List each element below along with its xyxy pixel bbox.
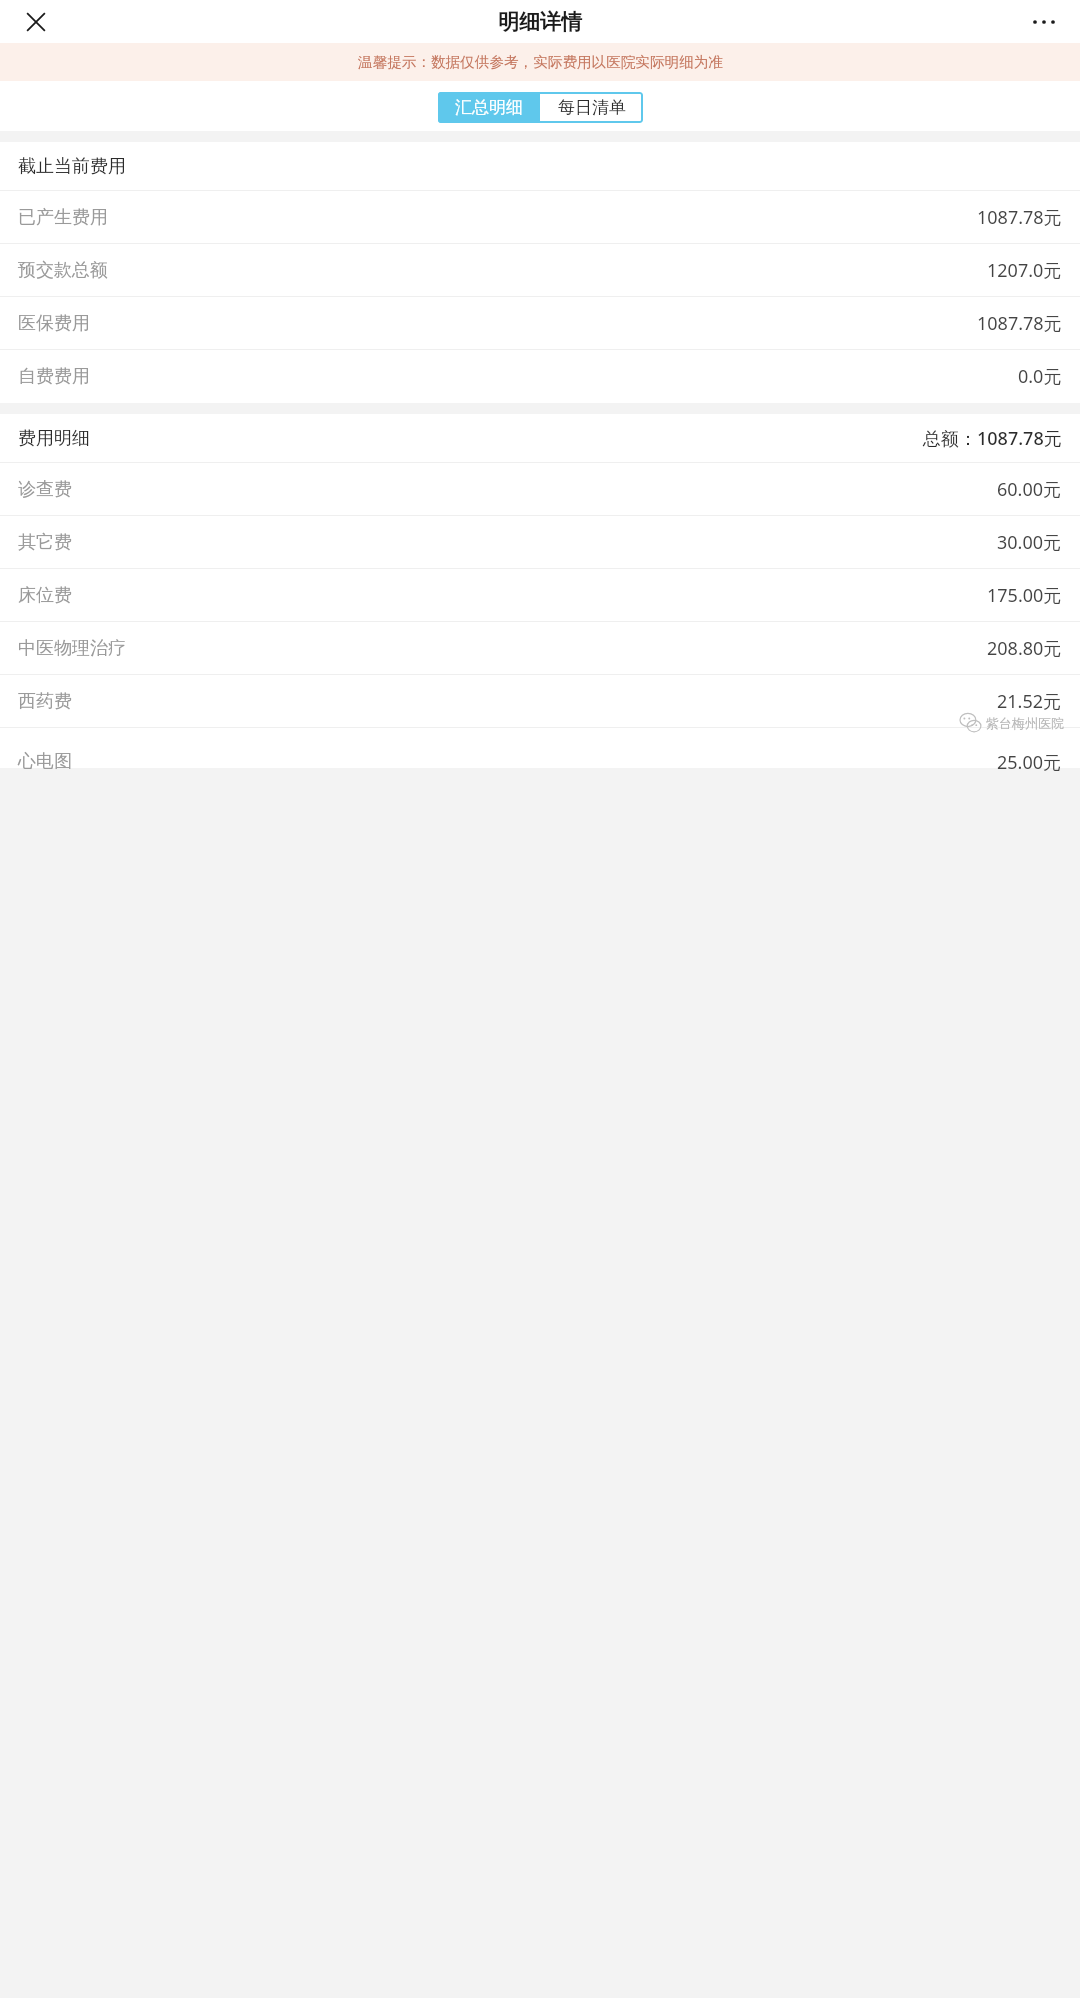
- staticText: 总额：1087.78元: [923, 426, 1062, 451]
- button[interactable]: Close: [14, 0, 58, 43]
- staticText: 明细详情: [498, 9, 582, 35]
- staticText: 1087.78元: [977, 311, 1062, 336]
- button[interactable]: 其它费: [0, 516, 1080, 569]
- staticText: 每日清单: [558, 97, 626, 118]
- staticText: 21.52元: [997, 689, 1062, 714]
- button[interactable]: 心电图: [0, 728, 1080, 768]
- button[interactable]: 医保费用: [0, 297, 1080, 350]
- staticText: 1207.0元: [987, 258, 1062, 283]
- staticText: 诊查费: [18, 478, 72, 501]
- staticText: 175.00元: [987, 583, 1062, 608]
- staticText: 温馨提示：数据仅供参考，实际费用以医院实际明细为准: [358, 53, 723, 71]
- staticText: 费用明细: [18, 427, 90, 450]
- staticText: 25.00元: [997, 750, 1062, 775]
- staticText: 预交款总额: [18, 259, 108, 282]
- staticText: 208.80元: [987, 636, 1062, 661]
- button[interactable]: 每日清单: [540, 92, 643, 123]
- staticText: 60.00元: [997, 477, 1062, 502]
- button[interactable]: 中医物理治疗: [0, 622, 1080, 675]
- button[interactable]: 已产生费用: [0, 191, 1080, 244]
- button[interactable]: 截止当前费用: [0, 142, 1080, 191]
- button[interactable]: 自费费用: [0, 350, 1080, 403]
- button[interactable]: 费用明细: [0, 414, 1080, 463]
- staticText: 0.0元: [1018, 364, 1062, 389]
- staticText: 30.00元: [997, 530, 1062, 555]
- staticText: 紫台梅州医院: [986, 715, 1064, 731]
- staticText: 1087.78元: [977, 205, 1062, 230]
- button[interactable]: 西药费: [0, 675, 1080, 728]
- staticText: 已产生费用: [18, 206, 108, 229]
- staticText: 自费费用: [18, 365, 90, 388]
- staticText: 汇总明细: [455, 97, 523, 118]
- staticText: 医保费用: [18, 312, 90, 335]
- button[interactable]: 床位费: [0, 569, 1080, 622]
- staticText: 西药费: [18, 690, 72, 713]
- staticText: 中医物理治疗: [18, 637, 126, 660]
- staticText: 心电图: [18, 750, 72, 773]
- staticText: 床位费: [18, 584, 72, 607]
- button[interactable]: 汇总明细: [438, 92, 540, 123]
- button[interactable]: More options: [1022, 0, 1066, 43]
- button[interactable]: 预交款总额: [0, 244, 1080, 297]
- staticText: 截止当前费用: [18, 155, 126, 178]
- button[interactable]: 诊查费: [0, 463, 1080, 516]
- staticText: 其它费: [18, 531, 72, 554]
